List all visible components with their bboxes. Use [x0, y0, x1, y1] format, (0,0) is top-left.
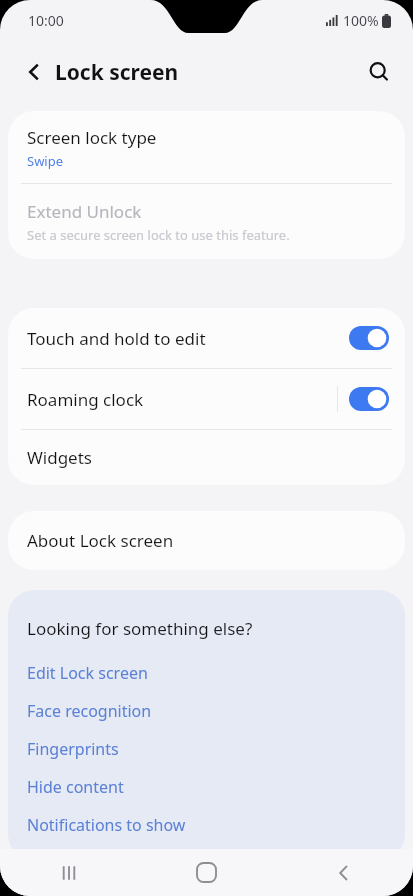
staticText: Screen lock type: [27, 126, 157, 149]
button[interactable]: Hide content: [27, 768, 386, 806]
staticText: Touch and hold to edit: [27, 327, 206, 350]
button[interactable]: Back: [12, 50, 56, 94]
button[interactable]: Back: [275, 849, 413, 896]
button[interactable]: Fingerprints: [27, 730, 386, 768]
staticText: Widgets: [27, 446, 92, 469]
button[interactable]: Roaming clock: [8, 369, 405, 429]
button[interactable]: Home: [137, 849, 275, 896]
staticText: Hide content: [27, 776, 124, 798]
button[interactable]: Face recognition: [27, 692, 386, 730]
button[interactable]: About Lock screen: [8, 511, 405, 570]
button[interactable]: Edit Lock screen: [27, 654, 386, 692]
staticText: Fingerprints: [27, 738, 119, 760]
staticText: Notifications to show: [27, 814, 186, 836]
button[interactable]: Notifications to show: [27, 806, 386, 844]
staticText: 100%: [343, 11, 379, 30]
staticText: Set a secure screen lock to use this fea…: [27, 226, 290, 244]
staticText: Lock screen: [55, 58, 179, 87]
staticText: Face recognition: [27, 700, 152, 722]
staticText: Looking for something else?: [27, 617, 253, 640]
button[interactable]: Touch and hold to edit: [8, 308, 405, 368]
staticText: Edit Lock screen: [27, 662, 148, 684]
staticText: Extend Unlock: [27, 200, 142, 223]
staticText: 10:00: [28, 11, 64, 30]
button[interactable]: Recents: [0, 849, 137, 896]
staticText: Swipe: [27, 152, 64, 170]
staticText: Roaming clock: [27, 388, 144, 411]
button[interactable]: Extend Unlock: [8, 184, 405, 259]
button[interactable]: Widgets: [8, 430, 405, 485]
button[interactable]: Search: [357, 50, 401, 94]
button[interactable]: Screen lock type: [8, 111, 405, 183]
staticText: About Lock screen: [27, 529, 174, 552]
